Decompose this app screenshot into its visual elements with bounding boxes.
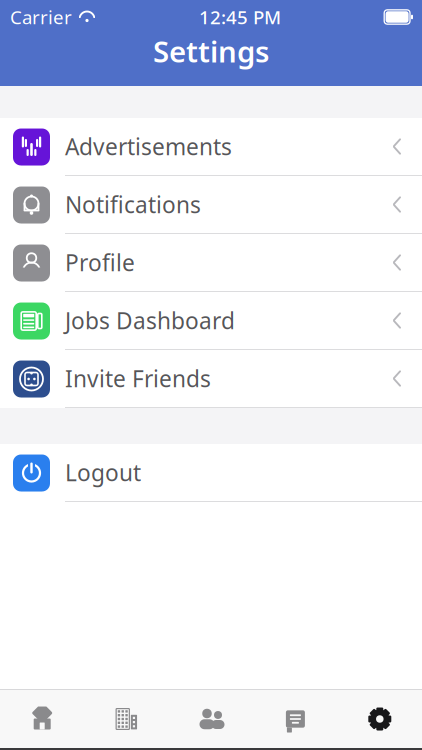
button[interactable]: People: [169, 690, 253, 748]
button[interactable]: Home: [0, 690, 84, 748]
staticText: Jobs Dashboard: [65, 305, 235, 335]
staticText: Settings: [153, 31, 269, 70]
staticText: Carrier: [10, 5, 72, 29]
button[interactable]: Invite Friends: [0, 350, 422, 408]
button[interactable]: Messages: [253, 690, 338, 748]
staticText: Profile: [65, 247, 135, 277]
staticText: Logout: [65, 457, 141, 487]
staticText: Advertisements: [65, 131, 232, 161]
button[interactable]: Advertisements: [0, 118, 422, 176]
button[interactable]: Logout: [0, 444, 422, 502]
staticText: 12:45 PM: [199, 5, 281, 29]
button[interactable]: Notifications: [0, 176, 422, 234]
button[interactable]: Jobs Dashboard: [0, 292, 422, 350]
button[interactable]: Profile: [0, 234, 422, 292]
staticText: Invite Friends: [65, 363, 211, 393]
button[interactable]: Companies: [84, 690, 169, 748]
staticText: Notifications: [65, 189, 201, 219]
button[interactable]: Settings: [338, 690, 422, 748]
